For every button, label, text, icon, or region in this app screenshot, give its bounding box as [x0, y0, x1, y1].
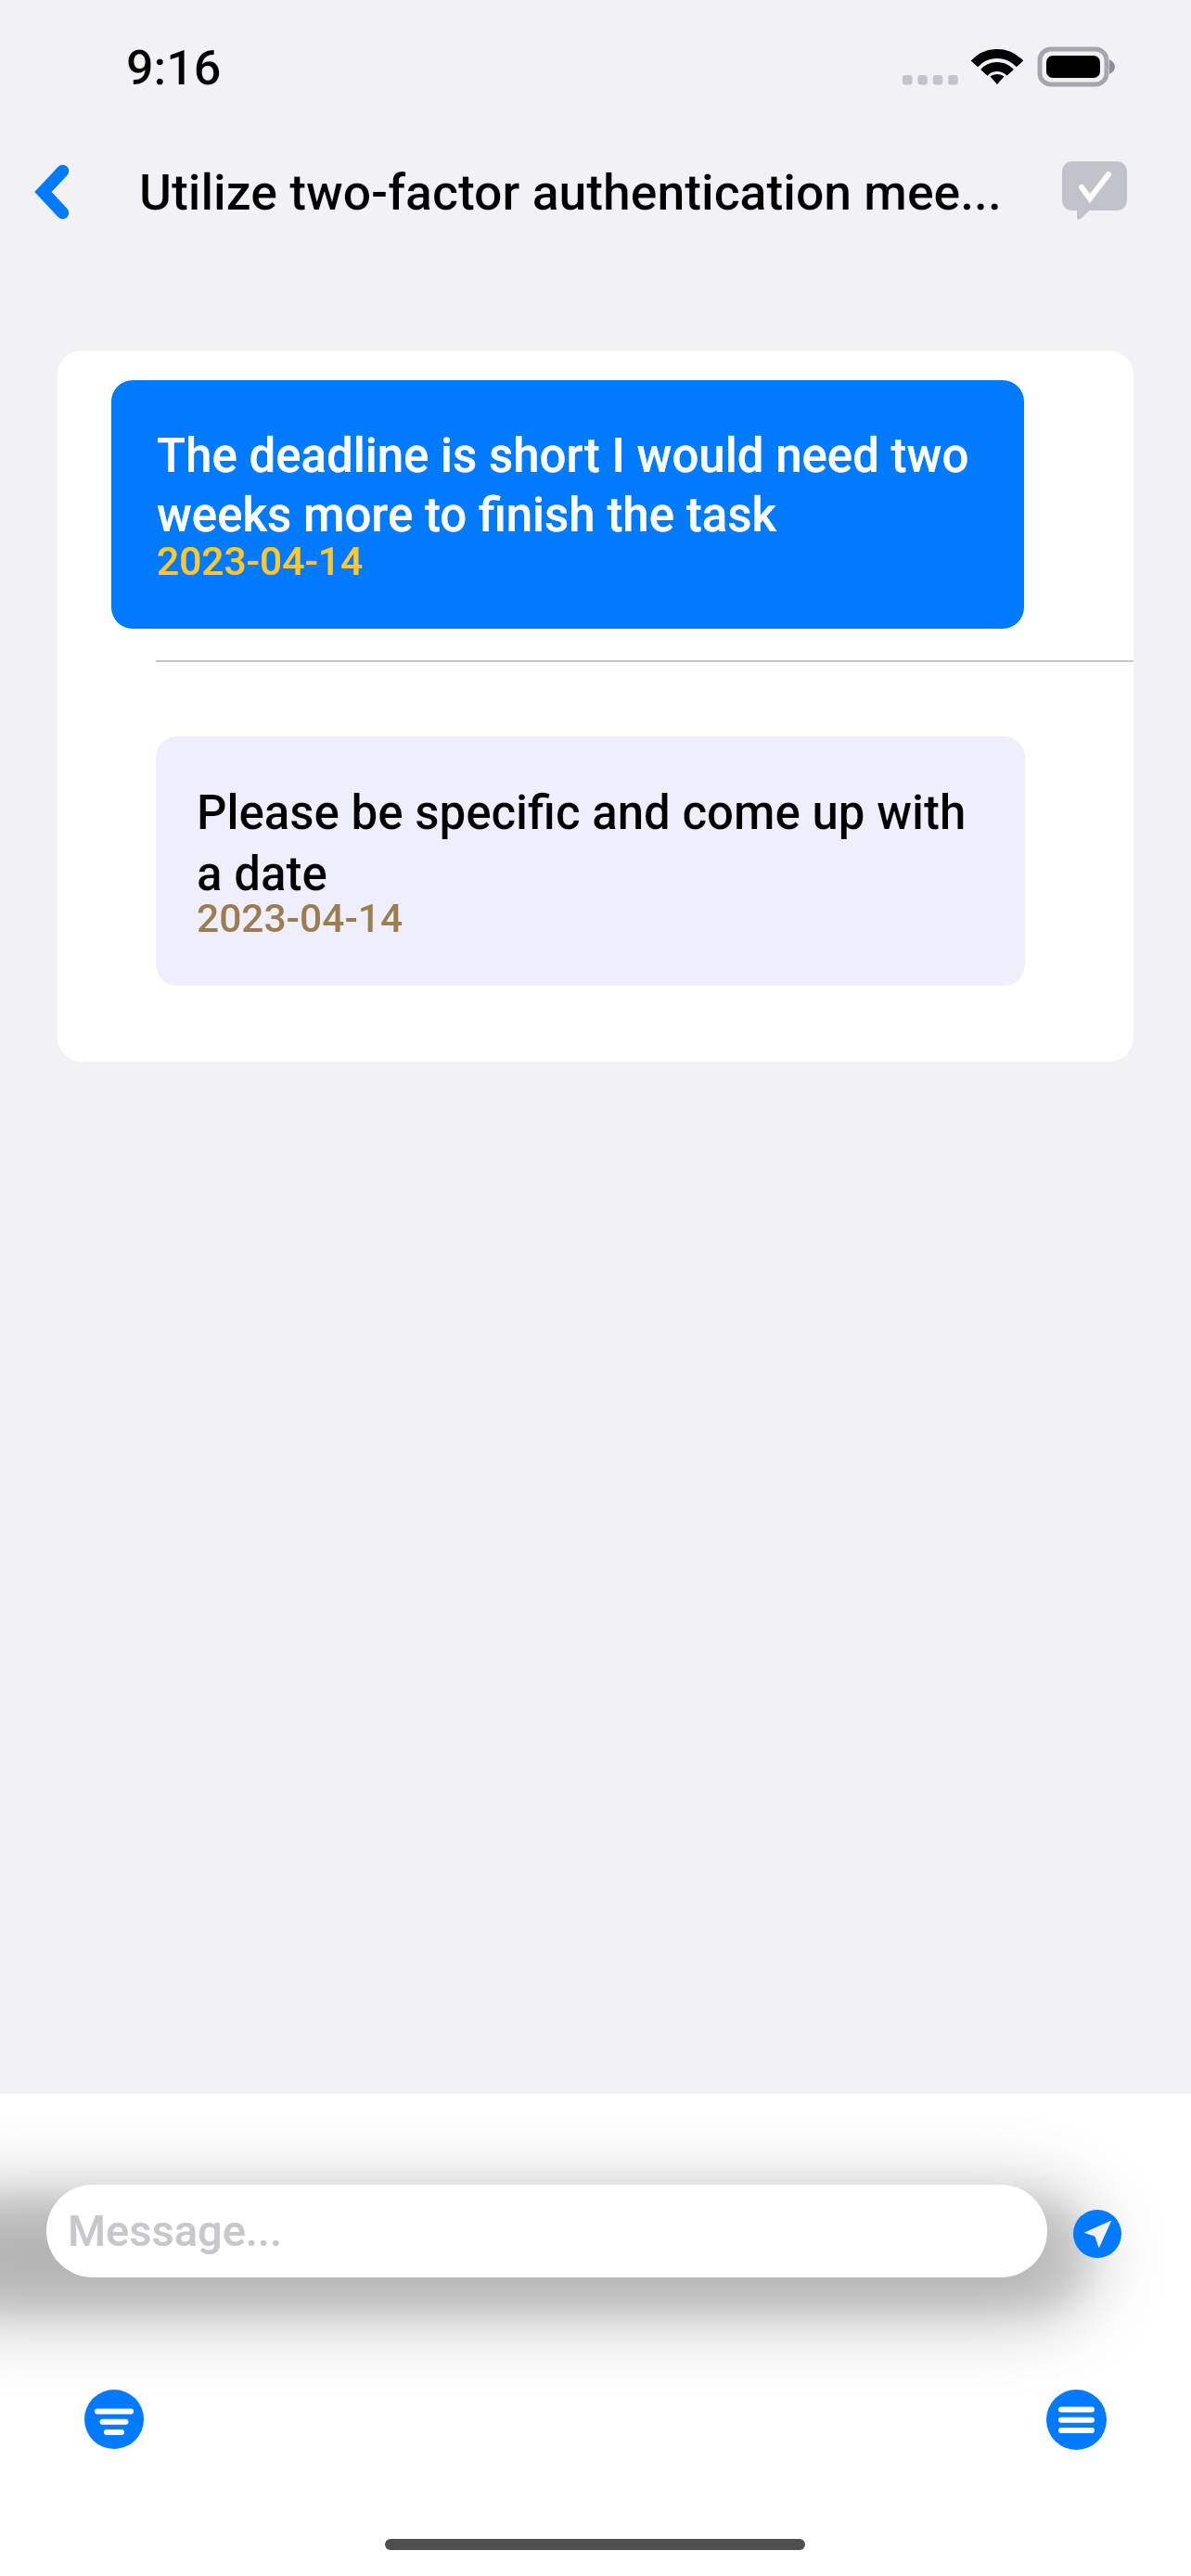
button[interactable]: Menu: [1046, 2390, 1107, 2450]
staticText: The deadline is short I would need two w…: [157, 425, 973, 543]
button[interactable]: Sort: [84, 2390, 144, 2449]
staticText: Utilize two-factor authentication mee...: [139, 163, 1002, 222]
button[interactable]: The deadline is short I would need two w…: [111, 380, 1024, 629]
button[interactable]: Please be specific and come up with a da…: [156, 736, 1025, 986]
button[interactable]: Comments: [1048, 121, 1150, 230]
button[interactable]: Message...: [46, 2185, 1047, 2277]
staticText: 2023-04-14: [157, 539, 364, 585]
staticText: 9:16: [126, 40, 222, 96]
staticText: Please be specific and come up with a da…: [197, 781, 976, 903]
staticText: Message...: [68, 2205, 282, 2256]
button[interactable]: Back: [0, 121, 106, 230]
staticText: 2023-04-14: [197, 896, 403, 942]
button[interactable]: Send: [1073, 2210, 1121, 2258]
